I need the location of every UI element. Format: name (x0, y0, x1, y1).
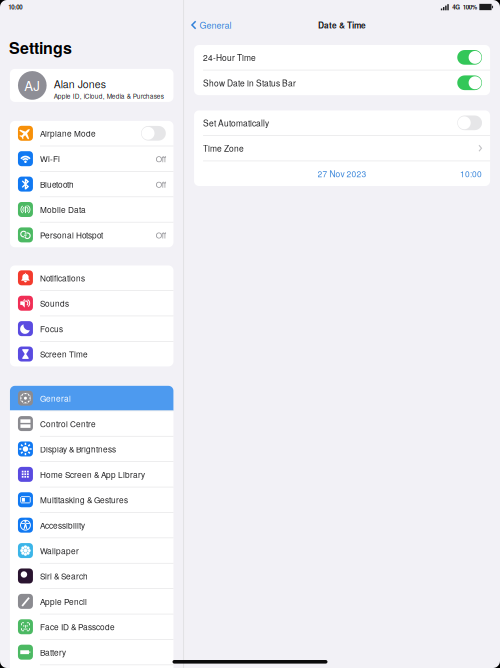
staticText: Personal Hotspot (40, 229, 103, 241)
staticText: Wallpaper (40, 545, 79, 556)
button[interactable]: Focus (10, 316, 173, 341)
staticText: Mobile Data (40, 204, 86, 215)
staticText: Settings (9, 36, 72, 59)
button[interactable]: Show Date in Status Bar (194, 70, 490, 95)
button[interactable]: 27 Nov 2023 (194, 161, 490, 186)
button[interactable]: Sounds (10, 291, 173, 316)
button[interactable]: 24-Hour Time (194, 45, 490, 70)
staticText: Accessibility (40, 519, 85, 531)
staticText: General (199, 19, 231, 31)
button[interactable]: Personal Hotspot (10, 222, 173, 247)
staticText: Off (156, 153, 166, 164)
button[interactable]: Wallpaper (10, 538, 173, 563)
staticText: Notifications (40, 272, 85, 284)
button[interactable]: Notifications (10, 265, 173, 290)
staticText: Time Zone (203, 142, 244, 154)
button[interactable]: Screen Time (10, 342, 173, 366)
staticText: Display & Brightness (40, 443, 116, 455)
button[interactable]: Time Zone (194, 136, 490, 161)
staticText: 27 Nov 2023 (317, 168, 366, 180)
staticText: Wi-Fi (40, 153, 60, 164)
staticText: Off (156, 178, 166, 190)
staticText: Bluetooth (40, 178, 74, 190)
button[interactable]: Display & Brightness (10, 437, 173, 461)
button[interactable]: Accessibility (10, 513, 173, 538)
staticText: General (40, 392, 71, 404)
button[interactable]: Battery (10, 640, 173, 665)
button[interactable]: Set Automatically (194, 110, 490, 135)
button[interactable]: Multitasking & Gestures (10, 487, 173, 512)
staticText: Alan Jones (54, 76, 106, 91)
staticText: Face ID & Passcode (40, 621, 115, 633)
button[interactable]: Mobile Data (10, 197, 173, 222)
button[interactable]: Siri & Search (10, 564, 173, 588)
staticText: 24-Hour Time (203, 51, 256, 63)
button[interactable]: Bluetooth (10, 172, 173, 196)
staticText: Battery (40, 646, 66, 658)
button[interactable]: General (10, 386, 173, 411)
button[interactable]: Control Centre (10, 411, 173, 436)
staticText: AJ (24, 76, 40, 95)
staticText: Multitasking & Gestures (40, 494, 128, 506)
button[interactable]: Wi-Fi (10, 146, 173, 171)
staticText: Set Automatically (203, 117, 269, 129)
staticText: Sounds (40, 297, 69, 309)
staticText: 100% (463, 3, 477, 11)
staticText: 4G (452, 3, 460, 11)
staticText: Control Centre (40, 418, 96, 429)
staticText: Show Date in Status Bar (203, 77, 296, 89)
staticText: Off (156, 229, 166, 241)
staticText: Focus (40, 323, 63, 334)
button[interactable]: General (184, 15, 237, 35)
staticText: 10:00 (8, 3, 22, 11)
button[interactable]: Apple Pencil (10, 589, 173, 614)
button[interactable]: AJ (10, 69, 173, 102)
staticText: Apple ID, iCloud, Media & Purchases (54, 91, 164, 101)
button[interactable]: Home Screen & App Library (10, 462, 173, 487)
button[interactable]: Airplane Mode (10, 121, 173, 146)
staticText: 10:00 (460, 168, 482, 180)
staticText: Airplane Mode (40, 127, 96, 139)
staticText: Home Screen & App Library (40, 468, 145, 480)
button[interactable]: Face ID & Passcode (10, 614, 173, 639)
staticText: Date & Time (318, 19, 366, 31)
staticText: Siri & Search (40, 570, 88, 582)
staticText: Apple Pencil (40, 595, 87, 607)
staticText: Screen Time (40, 348, 88, 360)
